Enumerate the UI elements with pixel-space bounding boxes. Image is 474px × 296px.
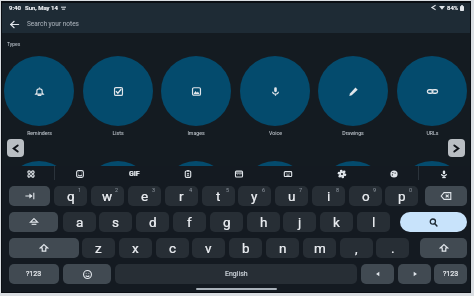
staticText: Drawings	[342, 130, 364, 136]
button[interactable]: k	[320, 212, 353, 232]
button[interactable]: s	[99, 212, 132, 232]
staticText: 9:40	[9, 4, 21, 11]
button[interactable]: x	[119, 238, 152, 258]
button[interactable]: Shift	[9, 238, 79, 258]
staticText: 6	[262, 187, 266, 193]
button[interactable]: h	[247, 212, 280, 232]
button[interactable]: Drawings	[318, 56, 388, 126]
button[interactable]: Back	[2, 15, 470, 33]
staticText: s	[112, 214, 119, 230]
button[interactable]: Caps lock	[9, 212, 58, 232]
staticText: GIF	[129, 170, 140, 178]
button[interactable]: URLs	[397, 56, 467, 126]
button[interactable]: Search	[400, 212, 467, 232]
button[interactable]: Tab	[9, 186, 50, 206]
staticText: ?123	[443, 270, 459, 278]
staticText: Search your notes	[27, 20, 79, 28]
button[interactable]: w	[91, 186, 124, 206]
staticText: k	[333, 214, 340, 230]
button[interactable]: Clipboard	[177, 166, 199, 181]
staticText: v	[205, 240, 212, 256]
staticText: r	[179, 188, 184, 204]
staticText: y	[251, 188, 258, 204]
button[interactable]: Emoji	[63, 264, 111, 284]
staticText: ?123	[26, 270, 42, 278]
staticText: 7	[299, 187, 303, 193]
staticText: m	[314, 240, 326, 256]
button[interactable]: o	[349, 186, 382, 206]
button[interactable]: Reminders	[4, 56, 74, 126]
button[interactable]: Move cursor right	[398, 264, 431, 284]
staticText: ,	[355, 240, 358, 256]
button[interactable]: Translate	[228, 166, 250, 181]
button[interactable]: Move cursor left	[361, 264, 394, 284]
button[interactable]: p	[385, 186, 418, 206]
button[interactable]: Stickers	[69, 166, 91, 181]
staticText: j	[298, 214, 302, 230]
staticText: d	[149, 214, 157, 230]
button[interactable]: Images	[161, 161, 231, 231]
button[interactable]: Voice	[240, 56, 310, 126]
button[interactable]: Previous	[7, 139, 24, 157]
button[interactable]: Reminders	[4, 161, 74, 231]
staticText: l	[372, 214, 376, 230]
button[interactable]: r	[165, 186, 198, 206]
staticText: z	[95, 240, 102, 256]
staticText: f	[187, 214, 192, 230]
button[interactable]: d	[136, 212, 169, 232]
button[interactable]: e	[128, 186, 161, 206]
button[interactable]: t	[202, 186, 235, 206]
button[interactable]: URLs	[397, 161, 467, 231]
button[interactable]: ?123	[9, 264, 59, 284]
staticText: Lists	[112, 130, 124, 136]
button[interactable]: v	[192, 238, 225, 258]
button[interactable]: Settings	[331, 166, 353, 181]
button[interactable]: m	[303, 238, 336, 258]
button[interactable]: Apps	[20, 166, 42, 181]
staticText: 84%	[447, 4, 459, 11]
button[interactable]: Lists	[83, 161, 153, 231]
button[interactable]: l	[357, 212, 390, 232]
button[interactable]: q	[54, 186, 87, 206]
button[interactable]: f	[173, 212, 206, 232]
staticText: Images	[187, 130, 205, 136]
staticText: Voice	[269, 130, 282, 136]
button[interactable]: c	[156, 238, 189, 258]
button[interactable]: Drawings	[318, 161, 388, 231]
button[interactable]: Back	[7, 17, 22, 32]
button[interactable]: Voice input	[433, 166, 455, 181]
button[interactable]: n	[266, 238, 299, 258]
staticText: a	[76, 214, 84, 230]
button[interactable]: .	[376, 238, 409, 258]
staticText: 8	[336, 187, 340, 193]
staticText: 9	[373, 187, 377, 193]
button[interactable]: Text editing	[277, 166, 299, 181]
button[interactable]: z	[82, 238, 115, 258]
staticText: o	[362, 188, 370, 204]
button[interactable]: GIF	[123, 166, 145, 181]
button[interactable]: a	[63, 212, 96, 232]
staticText: Types	[7, 41, 21, 47]
button[interactable]: y	[238, 186, 271, 206]
button[interactable]: English	[115, 264, 357, 284]
button[interactable]: Lists	[83, 56, 153, 126]
button[interactable]: Images	[161, 56, 231, 126]
button[interactable]: j	[283, 212, 316, 232]
button[interactable]: i	[312, 186, 345, 206]
staticText: e	[141, 188, 149, 204]
staticText: Reminders	[27, 130, 52, 136]
staticText: 2	[115, 187, 119, 193]
button[interactable]: g	[210, 212, 243, 232]
button[interactable]: b	[229, 238, 262, 258]
button[interactable]: ,	[340, 238, 373, 258]
button[interactable]: Next	[448, 139, 465, 157]
button[interactable]: Voice	[240, 161, 310, 231]
staticText: Sun, May 14	[25, 4, 58, 11]
button[interactable]: Shift	[420, 238, 467, 258]
button[interactable]: Backspace	[425, 186, 467, 206]
button[interactable]: Themes	[383, 166, 405, 181]
button[interactable]: u	[275, 186, 308, 206]
staticText: English	[225, 270, 248, 278]
staticText: .	[391, 240, 395, 256]
button[interactable]: ?123	[434, 264, 467, 284]
